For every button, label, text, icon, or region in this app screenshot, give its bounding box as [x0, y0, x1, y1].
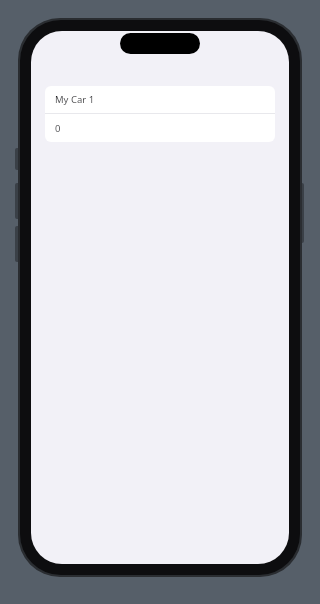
- other: Silent switch: [15, 148, 20, 170]
- staticText: 0: [55, 122, 61, 135]
- button[interactable]: My Car 1: [45, 86, 275, 142]
- other: Power: [299, 183, 304, 243]
- button[interactable]: My Car 1: [45, 86, 275, 113]
- staticText: My Car 1: [55, 93, 95, 106]
- other: Volume down: [15, 226, 20, 262]
- other: Volume up: [15, 183, 20, 219]
- button[interactable]: 0: [45, 114, 275, 142]
